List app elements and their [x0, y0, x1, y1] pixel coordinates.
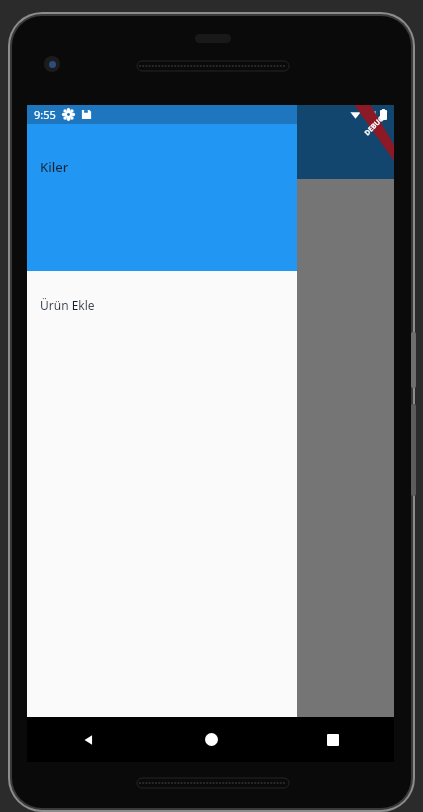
staticText: DEBUG: [362, 114, 387, 138]
button[interactable]: Home: [150, 717, 272, 762]
staticText: Ürün Ekle: [40, 297, 95, 313]
staticText: 9:55: [34, 107, 56, 122]
staticText: Kiler: [40, 158, 69, 176]
button[interactable]: Ürün Ekle: [27, 295, 297, 315]
button[interactable]: Back: [27, 717, 150, 762]
button[interactable]: Recent apps: [272, 717, 394, 762]
